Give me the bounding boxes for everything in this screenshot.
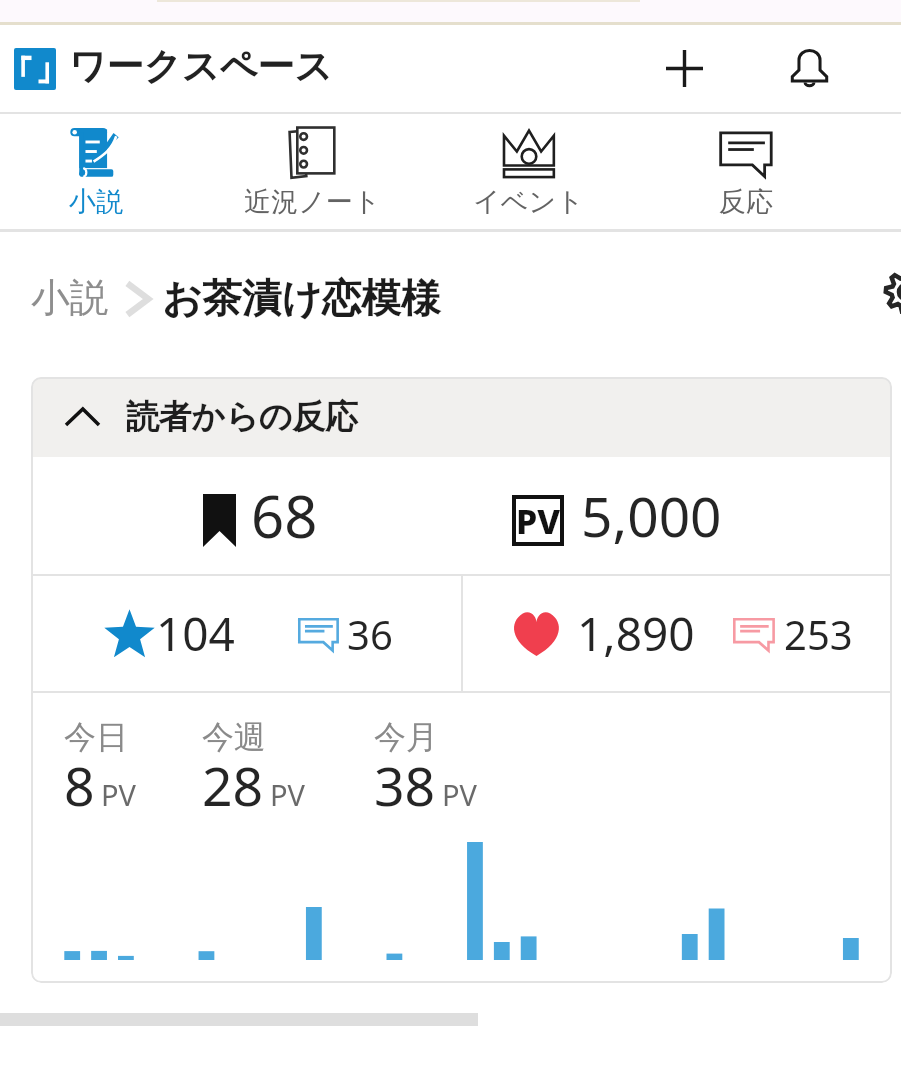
staticText: 28 (202, 749, 264, 819)
staticText: お茶漬け恋模様 (162, 274, 441, 324)
button[interactable]: 近況ノート (204, 114, 420, 229)
staticText: 36 (347, 607, 393, 661)
button[interactable]: 読者からの反応 (31, 377, 892, 457)
staticText: 104 (156, 602, 235, 665)
button[interactable]: Settings (884, 270, 901, 314)
button[interactable]: 小説 (0, 114, 204, 229)
staticText: ワークスペース (69, 43, 333, 90)
staticText: 近況ノート (244, 185, 381, 219)
button[interactable]: 反応 (637, 114, 854, 229)
staticText: 253 (784, 607, 853, 661)
staticText: 小説 (31, 274, 109, 323)
button[interactable]: 小説 (31, 274, 109, 323)
staticText: 8 (64, 749, 95, 819)
button[interactable]: Notifications (769, 25, 849, 112)
staticText: 反応 (719, 185, 773, 219)
staticText: 今日 (64, 717, 128, 757)
staticText: PV (270, 775, 305, 814)
staticText: PV (101, 775, 136, 814)
staticText: 小説 (69, 185, 123, 219)
staticText: PV (516, 498, 561, 544)
staticText: PV (442, 775, 477, 814)
staticText: 68 (251, 476, 318, 555)
staticText: 読者からの反応 (126, 396, 358, 437)
staticText: 5,000 (581, 478, 722, 553)
staticText: 1,890 (577, 602, 695, 665)
staticText: イベント (473, 185, 584, 219)
staticText: 今月 (374, 717, 438, 757)
button[interactable]: イベント (420, 114, 637, 229)
button[interactable]: Add (644, 25, 724, 112)
staticText: 38 (374, 749, 436, 819)
staticText: 今週 (202, 717, 266, 757)
